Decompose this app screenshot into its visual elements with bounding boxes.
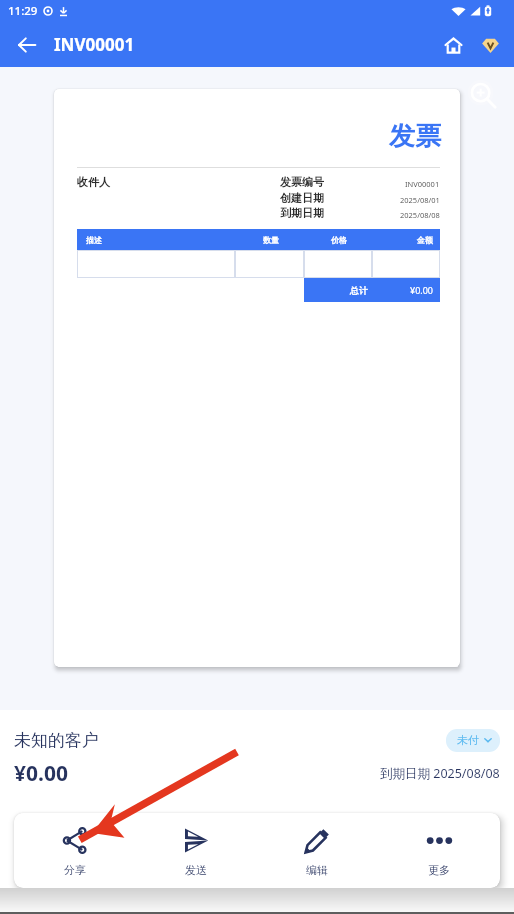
staticText: 到期日期: [280, 206, 324, 220]
staticText: INV00001: [54, 33, 135, 56]
staticText: ¥0.00: [14, 759, 68, 788]
staticText: 11:29: [8, 3, 38, 19]
staticText: 分享: [64, 863, 86, 877]
staticText: 更多: [428, 863, 450, 877]
button[interactable]: 未付: [446, 729, 500, 752]
staticText: 价格: [331, 235, 347, 245]
button[interactable]: 发送: [135, 813, 256, 888]
staticText: 到期日期 2025/08/08: [380, 765, 500, 782]
button[interactable]: 编辑: [256, 813, 378, 888]
staticText: 数量: [263, 235, 279, 245]
staticText: 金额: [417, 235, 433, 245]
staticText: 编辑: [306, 863, 328, 877]
button[interactable]: Home: [435, 27, 471, 63]
staticText: ¥0.00: [410, 284, 434, 296]
button[interactable]: 更多: [378, 813, 500, 888]
staticText: 未知的客户: [14, 730, 99, 751]
button[interactable]: 分享: [14, 813, 135, 888]
staticText: 未付: [457, 733, 479, 747]
staticText: 发票编号: [280, 175, 324, 189]
button[interactable]: Back: [10, 28, 44, 62]
button[interactable]: Zoom in: [467, 79, 501, 113]
staticText: 总计: [350, 285, 368, 296]
staticText: 收件人: [77, 175, 110, 189]
staticText: INV00001: [405, 179, 440, 189]
staticText: 创建日期: [280, 191, 324, 205]
staticText: 发票: [389, 120, 441, 153]
staticText: 描述: [86, 235, 102, 245]
staticText: 2025/08/01: [400, 195, 440, 205]
staticText: 发送: [185, 863, 207, 877]
button[interactable]: Premium: [472, 27, 508, 63]
staticText: 2025/08/08: [400, 210, 440, 220]
